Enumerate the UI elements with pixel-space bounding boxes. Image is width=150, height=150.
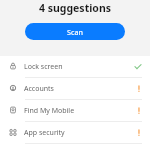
button[interactable]: Lock screen — [0, 56, 150, 77]
other: Warning — [134, 107, 142, 115]
staticText: Find My Mobile — [24, 106, 75, 116]
other: Warning — [134, 85, 142, 93]
staticText: 4 suggestions — [39, 1, 111, 15]
button[interactable]: Scan — [25, 23, 125, 40]
staticText: Lock screen — [24, 62, 63, 72]
button[interactable]: Find My Mobile — [0, 100, 150, 121]
staticText: Scan — [67, 27, 83, 37]
staticText: Accounts — [24, 84, 54, 94]
button[interactable]: Accounts — [0, 78, 150, 99]
other: Secure — [134, 63, 142, 71]
other: Warning — [134, 129, 142, 137]
button[interactable]: App security — [0, 122, 150, 143]
staticText: App security — [24, 128, 65, 138]
